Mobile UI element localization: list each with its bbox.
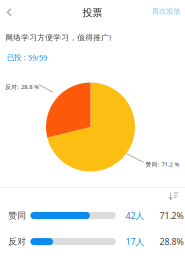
staticText: 赞同: 71.2 % — [145, 160, 179, 168]
staticText: 59/59 — [28, 52, 47, 63]
staticText: 反对 — [8, 236, 26, 247]
button[interactable]: Sort — [165, 188, 183, 204]
staticText: 17人 — [126, 236, 145, 248]
staticText: 42人 — [126, 209, 145, 221]
staticText: 已投： — [7, 53, 28, 62]
staticText: 投票 — [82, 6, 102, 19]
button[interactable]: 再次发放 — [148, 1, 184, 21]
staticText: 71.2% — [159, 209, 183, 221]
staticText: 28.8% — [159, 236, 183, 248]
staticText: 反对: 28.8 % — [5, 83, 39, 91]
staticText: 赞同 — [8, 210, 26, 221]
staticText: 再次发放 — [152, 6, 180, 16]
staticText: 网络学习方便学习，值得推广! — [5, 32, 111, 43]
button[interactable]: Back — [1, 2, 18, 22]
